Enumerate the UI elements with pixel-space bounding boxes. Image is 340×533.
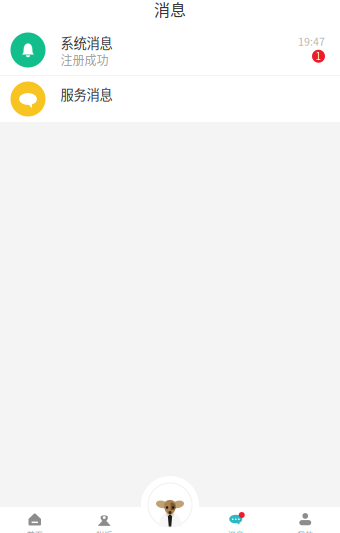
button[interactable]: 附近: [69, 507, 139, 532]
staticText: 1: [315, 48, 321, 63]
button[interactable]: 系统消息: [0, 25, 340, 75]
staticText: 我的: [297, 529, 313, 533]
staticText: 消息: [228, 529, 244, 533]
button[interactable]: 首页: [0, 507, 69, 532]
button[interactable]: 消息: [201, 507, 270, 532]
button[interactable]: 发布: [141, 476, 199, 533]
staticText: 系统消息: [60, 33, 112, 52]
staticText: 服务消息: [60, 84, 112, 104]
button[interactable]: 服务消息: [0, 76, 340, 122]
button[interactable]: 我的: [270, 507, 340, 532]
staticText: 注册成功: [60, 51, 108, 68]
staticText: 消息: [154, 0, 186, 21]
staticText: 首页: [27, 529, 43, 533]
staticText: 附近: [96, 529, 112, 533]
staticText: 19:47: [298, 33, 325, 49]
